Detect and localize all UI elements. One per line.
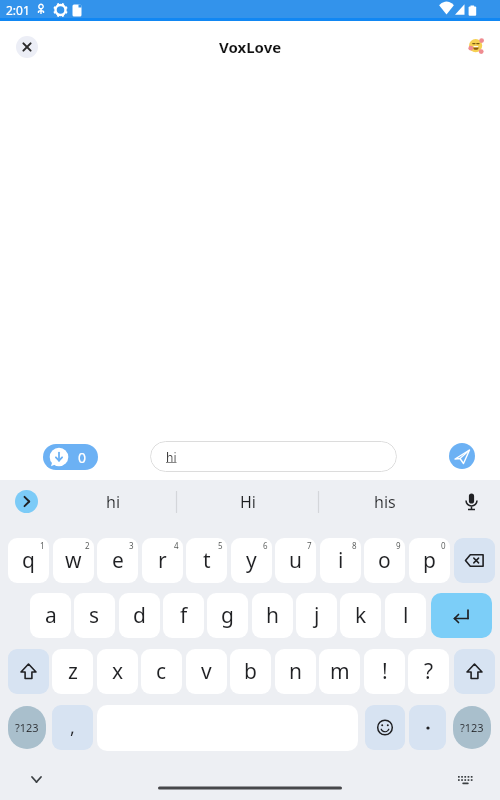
button[interactable]: [468, 37, 485, 54]
button[interactable]: i: [320, 538, 361, 583]
button[interactable]: ?123: [453, 706, 491, 749]
staticText: q: [22, 546, 35, 575]
staticText: VoxLove: [219, 37, 282, 57]
staticText: r: [158, 546, 167, 575]
staticText: 7: [307, 540, 312, 551]
staticText: x: [112, 657, 124, 686]
staticText: 6: [263, 540, 268, 551]
staticText: o: [378, 546, 391, 575]
staticText: 2:01: [6, 2, 30, 18]
button[interactable]: a: [30, 593, 71, 638]
button[interactable]: k: [340, 593, 381, 638]
button[interactable]: h: [252, 593, 293, 638]
staticText: f: [180, 601, 188, 630]
button[interactable]: ,: [52, 705, 93, 750]
button[interactable]: his: [327, 482, 442, 522]
staticText: 2: [85, 540, 90, 551]
button[interactable]: ?: [408, 649, 449, 694]
button[interactable]: l: [385, 593, 426, 638]
button[interactable]: [431, 593, 492, 638]
staticText: ,: [70, 715, 75, 740]
button[interactable]: !: [364, 649, 405, 694]
staticText: hi: [106, 491, 121, 513]
staticText: k: [355, 601, 367, 630]
button[interactable]: n: [275, 649, 316, 694]
button[interactable]: hi: [57, 482, 169, 522]
staticText: s: [89, 601, 100, 630]
button[interactable]: u: [275, 538, 316, 583]
button[interactable]: [409, 705, 446, 750]
staticText: 0: [441, 540, 446, 551]
button[interactable]: q: [8, 538, 49, 583]
staticText: a: [45, 601, 57, 630]
staticText: b: [244, 657, 257, 686]
staticText: h: [266, 601, 279, 630]
staticText: 9: [396, 540, 401, 551]
button[interactable]: s: [74, 593, 115, 638]
button[interactable]: ?123: [8, 706, 46, 749]
button[interactable]: [449, 443, 475, 469]
staticText: w: [65, 546, 82, 575]
button[interactable]: x: [97, 649, 138, 694]
staticText: p: [423, 546, 436, 575]
button[interactable]: 0: [43, 444, 98, 470]
button[interactable]: [15, 490, 38, 513]
button[interactable]: y: [231, 538, 272, 583]
staticText: 1: [40, 540, 45, 551]
button[interactable]: [454, 538, 495, 583]
button[interactable]: [8, 649, 49, 694]
staticText: g: [221, 601, 234, 630]
staticText: i: [338, 546, 344, 575]
button[interactable]: f: [163, 593, 204, 638]
button[interactable]: v: [186, 649, 227, 694]
button[interactable]: j: [296, 593, 337, 638]
staticText: his: [374, 491, 396, 513]
button[interactable]: hi: [150, 441, 397, 472]
button[interactable]: [16, 36, 38, 58]
staticText: !: [382, 657, 388, 686]
button[interactable]: m: [319, 649, 360, 694]
staticText: 4: [174, 540, 179, 551]
staticText: ?123: [460, 720, 484, 735]
button[interactable]: c: [141, 649, 182, 694]
button[interactable]: d: [119, 593, 160, 638]
staticText: ?: [424, 657, 434, 686]
button[interactable]: g: [207, 593, 248, 638]
staticText: v: [201, 657, 212, 686]
staticText: 8: [352, 540, 357, 551]
button[interactable]: z: [52, 649, 93, 694]
button[interactable]: t: [186, 538, 227, 583]
button[interactable]: [454, 649, 495, 694]
button[interactable]: w: [53, 538, 94, 583]
staticText: t: [203, 546, 211, 575]
button[interactable]: [365, 705, 405, 750]
staticText: 5: [218, 540, 223, 551]
staticText: n: [289, 657, 302, 686]
staticText: d: [133, 601, 146, 630]
button[interactable]: r: [142, 538, 183, 583]
staticText: ?123: [15, 720, 39, 735]
staticText: j: [314, 601, 320, 630]
staticText: hi: [166, 449, 177, 465]
staticText: u: [289, 546, 302, 575]
staticText: e: [112, 546, 124, 575]
button[interactable]: p: [409, 538, 450, 583]
staticText: Hi: [240, 491, 256, 513]
button[interactable]: Hi: [190, 482, 305, 522]
staticText: y: [246, 546, 257, 575]
staticText: 0: [78, 448, 87, 467]
button[interactable]: o: [364, 538, 405, 583]
staticText: 3: [129, 540, 134, 551]
button[interactable]: b: [230, 649, 271, 694]
staticText: l: [403, 601, 409, 630]
staticText: z: [68, 657, 78, 686]
staticText: m: [330, 657, 350, 686]
button[interactable]: e: [97, 538, 138, 583]
staticText: c: [156, 657, 167, 686]
